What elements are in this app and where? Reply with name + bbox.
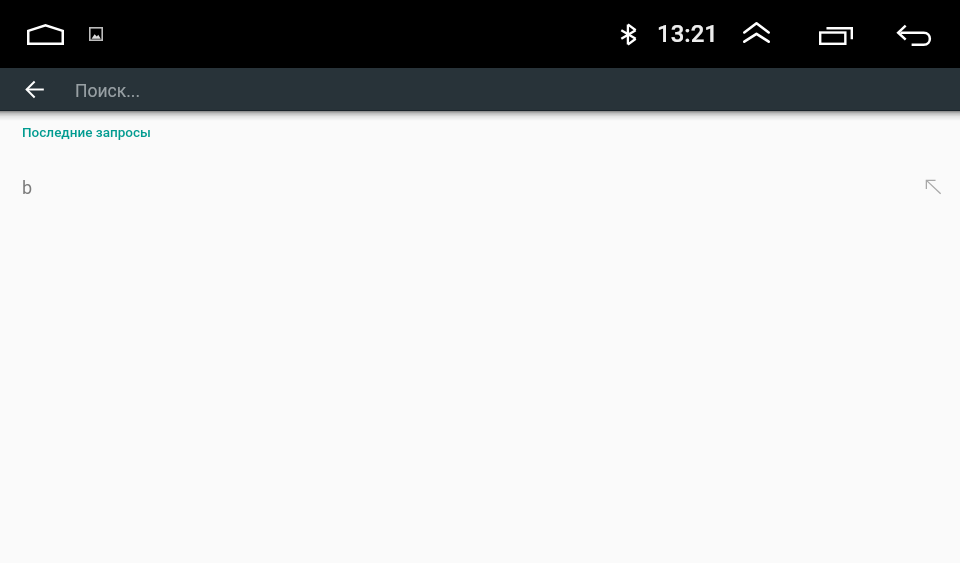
button[interactable]: Recent apps (812, 12, 860, 60)
staticText: Последние запросы (22, 124, 151, 140)
button[interactable]: Поиск... (75, 70, 960, 112)
other: Bluetooth (611, 14, 645, 54)
button[interactable]: b (0, 163, 960, 211)
staticText: 13:21 (657, 20, 718, 48)
button[interactable]: Expand status (732, 8, 780, 56)
staticText: Поиск... (75, 81, 141, 102)
staticText: b (22, 177, 33, 198)
button[interactable]: Insert query (909, 163, 957, 211)
button[interactable]: Navigate up (13, 68, 57, 110)
button[interactable]: Back (890, 10, 938, 58)
button[interactable]: Screenshot (79, 20, 112, 48)
button[interactable]: Home (15, 12, 75, 56)
